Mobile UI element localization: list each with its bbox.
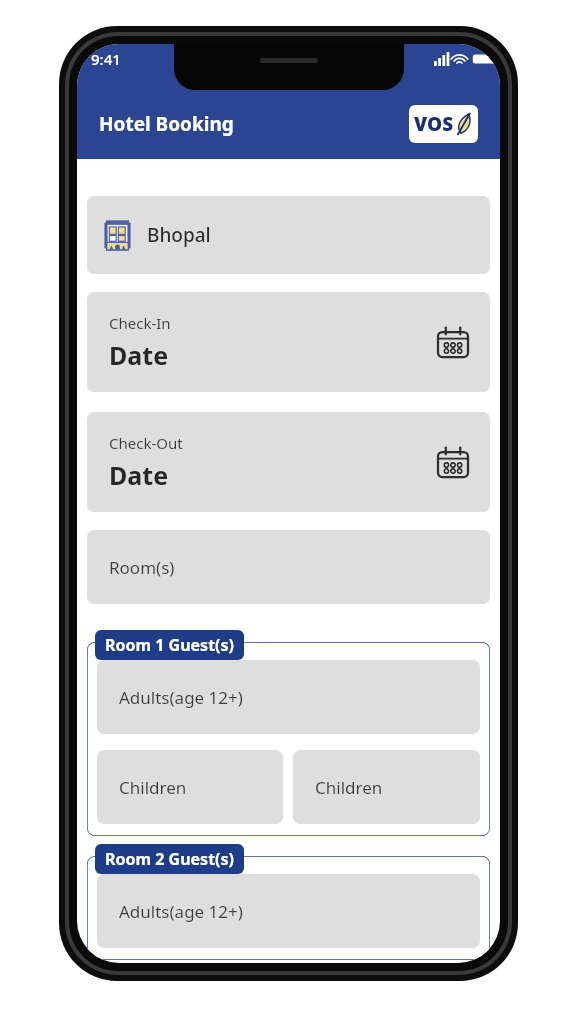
staticText: 9:41 bbox=[91, 49, 121, 69]
staticText: Bhopal bbox=[147, 222, 211, 248]
staticText: Hotel Booking bbox=[99, 111, 234, 137]
button[interactable]: Room 1 Guest(s) bbox=[95, 630, 244, 660]
staticText: Children bbox=[119, 776, 187, 799]
button[interactable]: Adults(age 12+) bbox=[97, 874, 480, 948]
button[interactable]: Children bbox=[97, 750, 283, 824]
staticText: Check-In bbox=[109, 313, 171, 333]
button[interactable]: Pick date bbox=[436, 445, 470, 479]
staticText: Room 1 Guest(s) bbox=[105, 634, 234, 656]
staticText: Adults(age 12+) bbox=[119, 686, 243, 709]
staticText: VOS bbox=[414, 111, 454, 137]
staticText: Adults(age 12+) bbox=[119, 900, 243, 923]
button[interactable]: Pick date bbox=[436, 325, 470, 359]
button[interactable]: VOS logo bbox=[409, 105, 478, 143]
staticText: Date bbox=[109, 338, 169, 372]
staticText: Room(s) bbox=[109, 556, 175, 579]
button[interactable]: Room(s) bbox=[87, 530, 490, 604]
button[interactable]: Check-Out bbox=[87, 412, 490, 512]
staticText: Check-Out bbox=[109, 433, 183, 453]
staticText: Children bbox=[315, 776, 383, 799]
button[interactable]: Check-In bbox=[87, 292, 490, 392]
button[interactable]: Room 2 Guest(s) bbox=[95, 844, 244, 874]
button[interactable]: Children bbox=[293, 750, 480, 824]
button[interactable]: Bhopal bbox=[87, 196, 490, 274]
button[interactable]: Adults(age 12+) bbox=[97, 660, 480, 734]
staticText: Room 2 Guest(s) bbox=[105, 848, 234, 870]
staticText: Date bbox=[109, 458, 169, 492]
